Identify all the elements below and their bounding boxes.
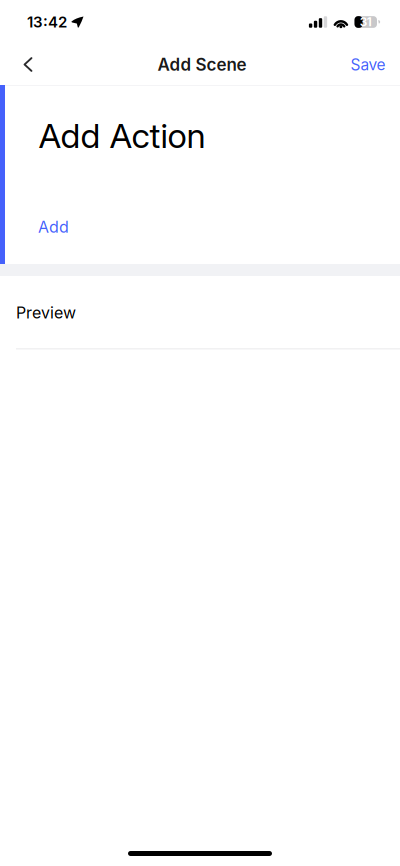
staticText: Save xyxy=(350,55,385,74)
staticText: Add Action xyxy=(38,115,205,156)
button[interactable]: Save xyxy=(350,44,385,85)
button[interactable]: Back xyxy=(6,44,50,85)
button[interactable]: Add xyxy=(5,213,81,240)
staticText: 31 xyxy=(360,15,372,29)
staticText: Add Scene xyxy=(157,54,246,75)
staticText: Add xyxy=(38,217,69,236)
staticText: Preview xyxy=(16,303,76,322)
staticText: 13:42 xyxy=(27,13,67,31)
